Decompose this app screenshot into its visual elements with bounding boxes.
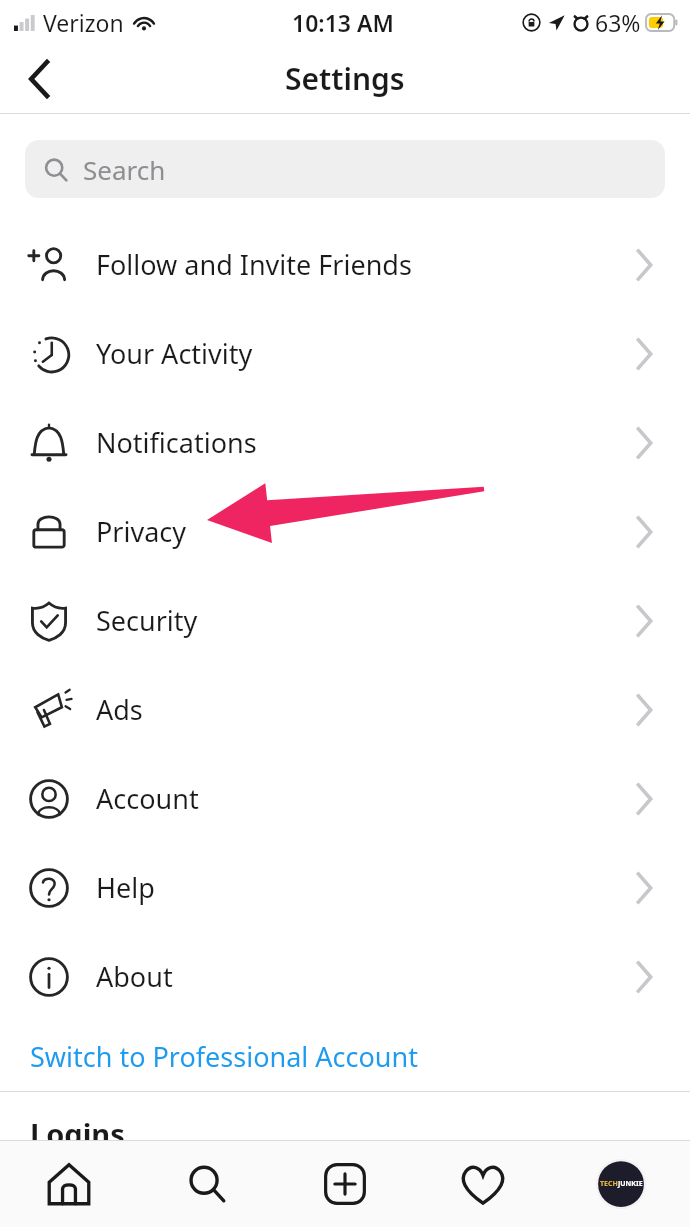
staticText: TECH: [600, 1179, 618, 1189]
button[interactable]: Your Activity: [0, 309, 690, 398]
staticText: Search: [83, 152, 166, 187]
staticText: Privacy: [96, 513, 187, 550]
button[interactable]: Security: [0, 576, 690, 665]
staticText: Settings: [285, 58, 405, 99]
button[interactable]: Profile: [552, 1141, 690, 1227]
staticText: Logins: [30, 1114, 125, 1153]
button[interactable]: Switch to Professional Account: [0, 1021, 690, 1091]
button[interactable]: Follow and Invite Friends: [0, 220, 690, 309]
button[interactable]: Privacy: [0, 487, 690, 576]
staticText: JUNKIE: [618, 1179, 643, 1189]
button[interactable]: Home: [0, 1141, 138, 1227]
staticText: Security: [96, 602, 198, 639]
staticText: About: [96, 958, 173, 995]
staticText: Your Activity: [96, 335, 253, 372]
staticText: Ads: [96, 691, 143, 728]
staticText: 10:13 AM: [292, 7, 394, 38]
staticText: Switch to Professional Account: [30, 1038, 418, 1075]
button[interactable]: Notifications: [0, 398, 690, 487]
button[interactable]: Ads: [0, 665, 690, 754]
button[interactable]: Back: [14, 53, 66, 105]
button[interactable]: About: [0, 932, 690, 1021]
staticText: Verizon: [43, 7, 124, 38]
button[interactable]: New Post: [276, 1141, 414, 1227]
staticText: Account: [96, 780, 199, 817]
staticText: 63%: [595, 7, 641, 38]
button[interactable]: Help: [0, 843, 690, 932]
staticText: Follow and Invite Friends: [96, 246, 412, 283]
button[interactable]: Search: [138, 1141, 276, 1227]
staticText: Help: [96, 869, 155, 906]
button[interactable]: Search: [25, 140, 665, 198]
staticText: Notifications: [96, 424, 257, 461]
button[interactable]: Activity: [414, 1141, 552, 1227]
button[interactable]: Account: [0, 754, 690, 843]
